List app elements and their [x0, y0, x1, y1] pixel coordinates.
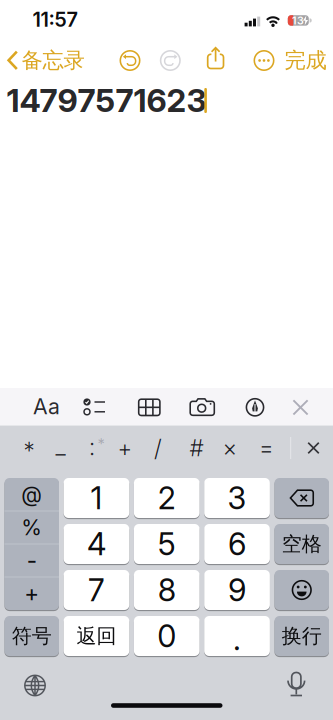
staticText: _ — [55, 433, 65, 459]
staticText: 0 — [157, 618, 176, 654]
staticText: 5 — [158, 526, 176, 562]
staticText: × — [222, 435, 237, 461]
staticText: * — [23, 437, 34, 464]
staticText: 8 — [158, 572, 176, 608]
staticText: : — [89, 434, 95, 460]
staticText: @ — [21, 482, 42, 507]
staticText: 6 — [228, 526, 246, 562]
staticText: 完成 — [284, 47, 326, 73]
staticText: + — [24, 580, 39, 607]
staticText: % — [21, 515, 42, 540]
staticText: 3 — [228, 480, 247, 516]
staticText: = — [259, 435, 274, 461]
staticText: 4 — [87, 526, 106, 562]
staticText: 1 — [90, 480, 102, 516]
staticText: 符号 — [12, 624, 52, 648]
staticText: 返回 — [76, 624, 116, 648]
staticText: 9 — [228, 572, 246, 608]
staticText: 备忘录 — [21, 47, 84, 73]
staticText: 14797571623 — [6, 81, 206, 119]
staticText: 11:57 — [32, 8, 77, 31]
staticText: 7 — [88, 572, 105, 608]
staticText: 换行 — [282, 624, 322, 648]
staticText: * — [97, 435, 104, 453]
staticText: 2 — [158, 480, 176, 516]
staticText: / — [154, 435, 162, 461]
staticText: - — [27, 547, 37, 574]
staticText: + — [117, 435, 132, 461]
staticText: Aa — [33, 394, 60, 419]
staticText: 13 — [292, 14, 304, 27]
staticText: . — [233, 621, 241, 657]
staticText: 空格 — [282, 532, 322, 556]
staticText: # — [189, 435, 203, 461]
